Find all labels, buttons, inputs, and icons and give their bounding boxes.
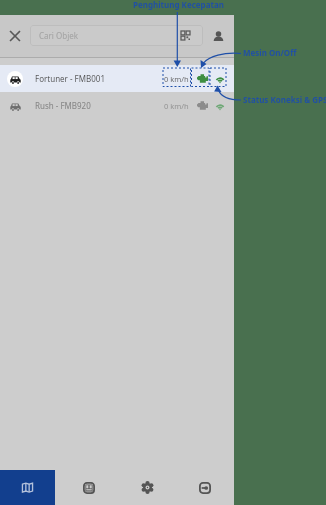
button[interactable]: Scan QR (175, 25, 195, 46)
button[interactable]: Reports (59, 470, 118, 505)
staticText: Rush - FMB920 (35, 100, 91, 111)
staticText: Cari Objek (39, 30, 79, 41)
staticText: Fortuner - FMB001 (35, 73, 105, 84)
button[interactable]: Fortuner - FMB001 (0, 65, 234, 92)
button[interactable]: Cari Objek (30, 25, 203, 46)
button[interactable]: Map (0, 470, 55, 505)
staticText: 0 km/h (164, 74, 189, 84)
staticText: Status Koneksi & GPS (243, 94, 326, 105)
staticText: Mesin On/Off (243, 47, 297, 58)
button[interactable]: Settings (118, 470, 176, 505)
button[interactable]: Profile (208, 26, 228, 46)
button[interactable]: Close (5, 26, 25, 46)
button[interactable]: Rush - FMB920 (0, 92, 234, 119)
staticText: Penghitung Kecepatan (133, 0, 224, 10)
button[interactable]: Logout (176, 470, 234, 505)
staticText: 0 km/h (164, 101, 189, 111)
